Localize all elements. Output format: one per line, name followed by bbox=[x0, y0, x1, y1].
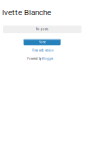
staticText: . bbox=[53, 57, 54, 61]
button[interactable]: View web version bbox=[0, 49, 85, 52]
staticText: Powered by bbox=[27, 57, 42, 61]
staticText: View web version bbox=[32, 49, 53, 52]
staticText: Blogger bbox=[42, 57, 53, 61]
staticText: Ivette Blanche bbox=[2, 7, 51, 17]
staticText: Home bbox=[39, 40, 46, 44]
staticText: No posts. bbox=[36, 27, 49, 31]
button[interactable]: Home bbox=[24, 39, 61, 45]
